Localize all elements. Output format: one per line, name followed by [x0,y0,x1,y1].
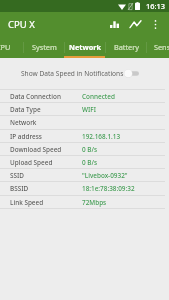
staticText: WIFI [82,105,96,114]
staticText: CPU X [8,18,35,31]
button[interactable]: Upload Speed [0,155,169,168]
button[interactable]: IP address [0,129,169,142]
button[interactable]: Show Data Speed in Notifications [0,58,169,89]
staticText: 0 B/s [82,158,98,167]
staticText: Show Data Speed in Notifications [21,69,124,78]
staticText: 72Mbps [82,198,107,207]
button[interactable]: Download Speed [0,142,169,155]
button[interactable]: Data Type [0,102,169,115]
button[interactable]: Sensors [147,36,169,58]
staticText: Data Type [10,105,41,114]
staticText: 192.168.1.13 [82,132,121,141]
button[interactable]: Link Speed [0,195,169,208]
staticText: System [32,42,57,52]
staticText: Sensors [154,42,169,52]
button[interactable]: Line chart [126,14,144,34]
staticText: IP address [10,132,42,141]
staticText: BSSID [10,184,29,193]
button[interactable]: Data Connection [0,89,169,102]
staticText: 16:13 [146,1,165,11]
button[interactable]: CPU [0,36,24,58]
staticText: SSID [10,171,24,180]
staticText: Battery [114,42,139,52]
staticText: Data Connection [10,92,61,101]
staticText: CPU [0,42,11,52]
button[interactable]: Bar chart [106,14,123,34]
staticText: "Livebox-0932" [82,171,128,180]
button[interactable]: Network [0,115,169,128]
button[interactable]: System [24,36,65,58]
staticText: Upload Speed [10,158,53,167]
button[interactable]: BSSID [0,181,169,194]
button[interactable]: Battery [106,36,147,58]
button[interactable]: More options [147,14,164,34]
staticText: Network [69,42,102,52]
button[interactable]: Network [65,36,106,58]
staticText: Connected [82,92,115,101]
button[interactable]: SSID [0,168,169,181]
staticText: Download Speed [10,145,62,154]
staticText: Network [10,118,37,127]
staticText: 18:1e:78:38:09:32 [82,184,135,193]
staticText: 0 B/s [82,145,98,154]
staticText: Link Speed [10,198,44,207]
